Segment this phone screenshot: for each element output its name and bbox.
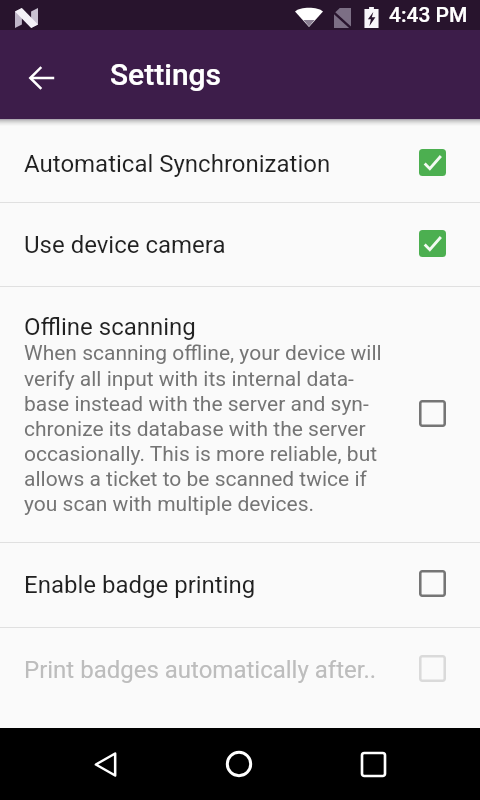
button[interactable]: Use device camera [0,203,480,286]
staticText: Print badges automatically after.. [24,656,377,684]
staticText: Automatical Synchronization [24,150,331,178]
staticText: 4:43 PM [389,3,468,28]
button[interactable]: Print badges automatically after.. [0,628,480,712]
button[interactable]: Offline scanning [0,287,480,542]
staticText: Settings [110,57,222,92]
staticText: Use device camera [24,231,226,259]
button[interactable]: Automatical Synchronization [0,126,480,202]
staticText: When scanning offline, your device will … [24,341,382,516]
button[interactable]: Home [215,728,263,800]
button[interactable]: Enable badge printing [0,543,480,627]
button[interactable]: Navigate up [18,54,66,102]
staticText: Enable badge printing [24,571,256,599]
staticText: Offline scanning [24,313,196,341]
button[interactable]: Back [81,728,129,800]
button[interactable]: Recent apps [349,728,397,800]
